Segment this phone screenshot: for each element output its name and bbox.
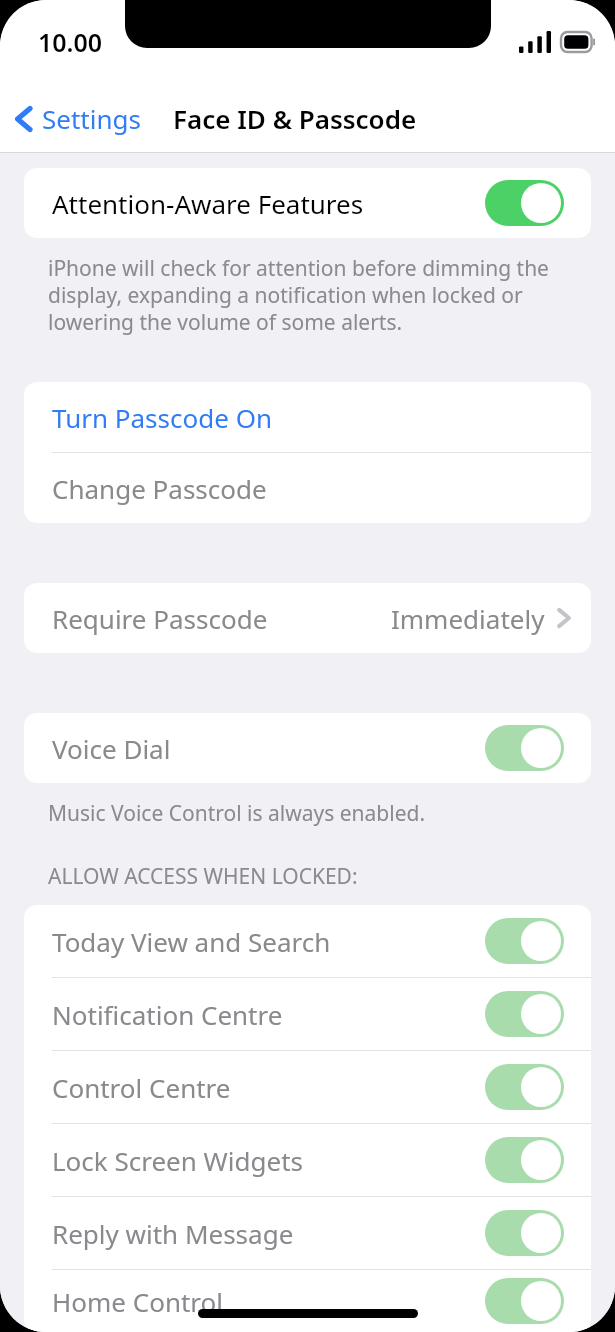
other: Toggle Home Control: [485, 1278, 564, 1324]
other: Toggle Control Centre: [485, 1064, 564, 1110]
staticText: Attention-Aware Features: [52, 186, 364, 221]
button[interactable]: Lock Screen Widgets: [24, 1124, 591, 1196]
button[interactable]: Today View and Search: [24, 905, 591, 977]
staticText: Notification Centre: [52, 997, 283, 1032]
staticText: Music Voice Control is always enabled.: [48, 799, 426, 828]
staticText: Immediately: [391, 601, 545, 636]
button[interactable]: Change Passcode: [24, 453, 591, 523]
button[interactable]: Attention-Aware Features: [24, 168, 591, 238]
button[interactable]: Voice Dial: [24, 713, 591, 783]
other: Toggle Notification Centre: [485, 991, 564, 1037]
button[interactable]: Notification Centre: [24, 978, 591, 1050]
button[interactable]: Require Passcode: [24, 583, 591, 653]
other: Toggle Reply with Message: [485, 1210, 564, 1256]
staticText: Voice Dial: [52, 731, 171, 766]
button[interactable]: Settings: [0, 95, 147, 142]
staticText: Settings: [42, 101, 141, 136]
button[interactable]: Home Control: [24, 1270, 591, 1332]
staticText: Turn Passcode On: [52, 400, 273, 435]
staticText: iPhone will check for attention before d…: [48, 254, 571, 336]
staticText: Reply with Message: [52, 1216, 294, 1251]
other: Toggle Voice Dial: [485, 725, 564, 771]
staticText: 10.00: [38, 25, 103, 59]
staticText: Lock Screen Widgets: [52, 1143, 303, 1178]
other: Toggle Today View and Search: [485, 918, 564, 964]
staticText: ALLOW ACCESS WHEN LOCKED:: [48, 862, 358, 891]
staticText: Today View and Search: [52, 924, 331, 959]
staticText: Face ID & Passcode: [173, 101, 417, 136]
staticText: Control Centre: [52, 1070, 231, 1105]
staticText: Require Passcode: [52, 601, 268, 636]
button[interactable]: Reply with Message: [24, 1197, 591, 1269]
staticText: Change Passcode: [52, 471, 267, 506]
staticText: Home Control: [52, 1284, 224, 1319]
button[interactable]: Control Centre: [24, 1051, 591, 1123]
other: Toggle Attention-Aware Features: [485, 180, 564, 226]
other: Toggle Lock Screen Widgets: [485, 1137, 564, 1183]
button[interactable]: Turn Passcode On: [24, 382, 591, 452]
